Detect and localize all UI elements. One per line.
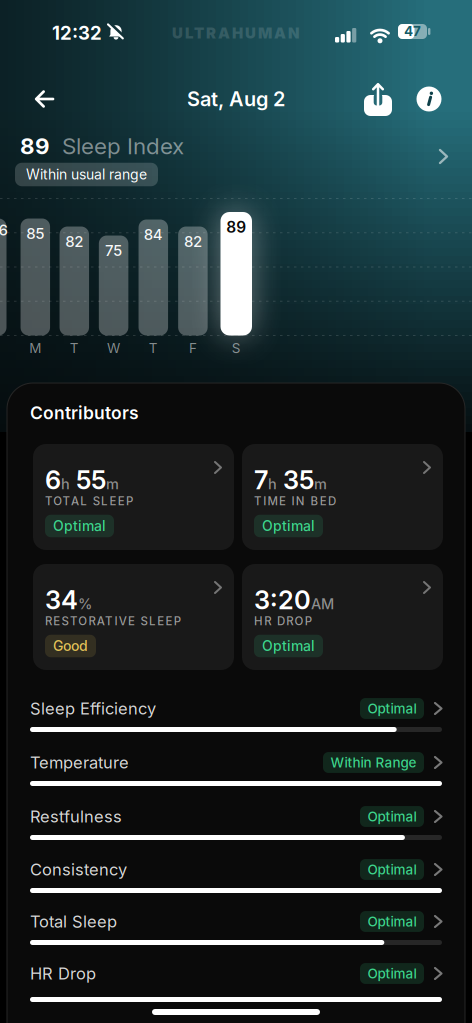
staticText: Good <box>53 638 88 654</box>
button[interactable] <box>363 81 393 117</box>
staticText: Consistency <box>30 860 127 879</box>
staticText: TOTAL SLEEP <box>45 494 133 508</box>
staticText: T <box>149 340 158 356</box>
staticText: Optimal <box>262 638 315 654</box>
staticText: TIME IN BED <box>254 494 336 508</box>
button[interactable]: Sleep Efficiency <box>0 698 472 750</box>
staticText: HR DROP <box>254 614 312 628</box>
staticText: Optimal <box>367 861 416 877</box>
staticText: Contributors <box>30 403 139 423</box>
staticText: h <box>61 475 70 492</box>
staticText: 85 <box>26 225 44 242</box>
staticText: 34 <box>45 585 78 615</box>
staticText: 47 <box>404 23 421 39</box>
button[interactable]: Total Sleep <box>0 911 472 963</box>
staticText: T <box>70 340 79 356</box>
staticText: 84 <box>144 226 163 243</box>
staticText: S <box>232 340 241 356</box>
staticText: h <box>268 475 277 492</box>
button[interactable]: Restfulness <box>0 806 472 858</box>
staticText: Optimal <box>367 808 416 824</box>
staticText: Within usual range <box>26 166 147 183</box>
staticText: m <box>314 475 327 492</box>
staticText: 6 <box>0 221 7 239</box>
button[interactable] <box>416 86 442 112</box>
staticText: F <box>189 340 197 356</box>
staticText: Sat, Aug 2 <box>187 87 285 111</box>
button[interactable]: 7 <box>242 444 443 550</box>
staticText: ULTRAHUMAN <box>172 24 300 42</box>
button[interactable]: 34 <box>33 564 234 670</box>
staticText: M <box>29 340 41 356</box>
staticText: 89 <box>20 133 50 159</box>
button[interactable]: HR Drop <box>0 963 472 1015</box>
staticText: 6 <box>45 465 61 495</box>
staticText: Sleep Index <box>62 133 184 159</box>
staticText: AM <box>311 595 334 612</box>
staticText: % <box>78 595 92 612</box>
staticText: Within Range <box>330 754 416 770</box>
button[interactable]: 89 <box>0 122 472 192</box>
button[interactable]: Consistency <box>0 859 472 911</box>
staticText: HR Drop <box>30 964 96 983</box>
staticText: m <box>106 475 119 492</box>
staticText: 89 <box>226 218 246 236</box>
staticText: Optimal <box>53 518 106 534</box>
staticText: Sleep Efficiency <box>30 699 156 718</box>
staticText: 82 <box>184 233 202 250</box>
staticText: Optimal <box>367 913 416 929</box>
button[interactable] <box>24 81 64 117</box>
staticText: Total Sleep <box>30 912 117 931</box>
staticText: 55 <box>70 465 106 495</box>
staticText: Temperature <box>30 753 129 772</box>
staticText: W <box>107 340 120 356</box>
staticText: 7 <box>254 465 268 495</box>
staticText: Optimal <box>262 518 315 534</box>
button[interactable]: 6 <box>33 444 234 550</box>
staticText: 75 <box>105 242 122 259</box>
staticText: 35 <box>277 465 314 495</box>
staticText: Optimal <box>367 700 416 716</box>
staticText: Optimal <box>367 965 416 981</box>
staticText: 82 <box>65 233 83 250</box>
staticText: 3:20 <box>254 585 311 615</box>
button[interactable]: Temperature <box>0 752 472 804</box>
staticText: Restfulness <box>30 807 122 826</box>
staticText: 12:32 <box>52 22 102 44</box>
staticText: RESTORATIVE SLEEP <box>45 614 181 628</box>
button[interactable]: 3:20 <box>242 564 443 670</box>
